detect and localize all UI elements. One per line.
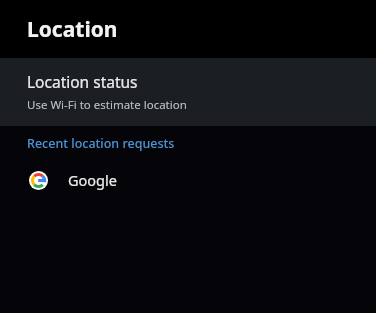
staticText: Use Wi-Fi to estimate location (27, 97, 187, 113)
staticText: Google (68, 170, 117, 190)
staticText: Location status (27, 71, 138, 92)
button[interactable]: Google (0, 160, 376, 200)
staticText: Recent location requests (27, 135, 175, 152)
staticText: Location (27, 15, 118, 44)
button[interactable]: Location status (0, 58, 376, 126)
other: Google (29, 171, 48, 190)
